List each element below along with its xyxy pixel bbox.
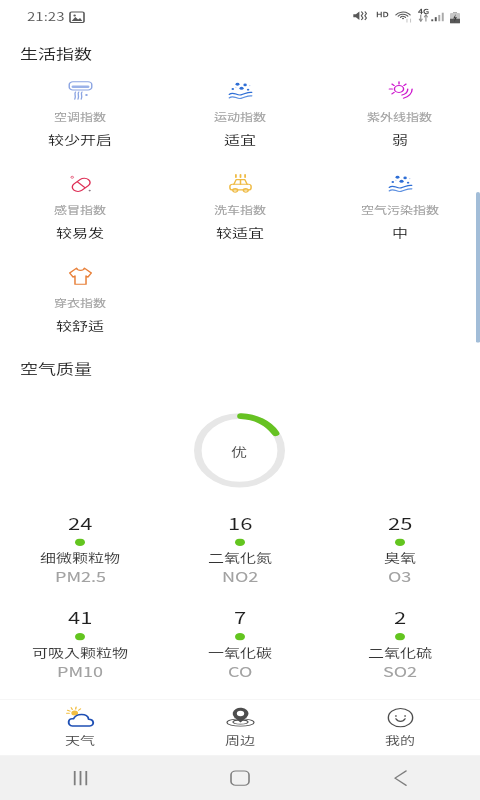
staticText: 弱: [392, 130, 409, 148]
staticText: NO2: [222, 566, 259, 586]
button[interactable]: 7: [160, 604, 320, 698]
staticText: 41: [68, 604, 93, 628]
staticText: SO2: [383, 661, 418, 680]
staticText: 运动指数: [214, 109, 267, 124]
staticText: 生活指数: [20, 43, 92, 62]
button[interactable]: 24: [0, 510, 160, 604]
staticText: 7: [234, 604, 247, 628]
staticText: 一氧化碳: [208, 643, 273, 661]
staticText: 可吸入颗粒物: [32, 643, 129, 661]
button[interactable]: 紫外线指数: [320, 78, 480, 171]
button[interactable]: 空调指数: [0, 78, 160, 171]
staticText: 较易发: [56, 223, 105, 241]
staticText: 25: [388, 510, 413, 534]
button[interactable]: 2: [320, 604, 480, 698]
button[interactable]: 25: [320, 510, 480, 604]
staticText: 适宜: [224, 130, 257, 148]
staticText: 天气: [65, 732, 96, 748]
staticText: 紫外线指数: [367, 109, 433, 124]
staticText: 21:23: [27, 8, 65, 25]
button[interactable]: 感冒指数: [0, 171, 160, 264]
staticText: O3: [388, 566, 412, 586]
staticText: 洗车指数: [214, 202, 267, 217]
staticText: 空调指数: [54, 109, 107, 124]
button[interactable]: 运动指数: [160, 78, 320, 171]
staticText: 较少开启: [48, 130, 113, 148]
staticText: 优: [231, 442, 248, 460]
staticText: 细微颗粒物: [40, 549, 121, 566]
staticText: 2: [394, 604, 407, 628]
staticText: 4G: [418, 6, 430, 16]
button[interactable]: Home: [160, 755, 320, 800]
staticText: 二氧化氮: [208, 549, 273, 566]
staticText: CO: [228, 661, 253, 680]
staticText: 中: [392, 223, 409, 241]
button[interactable]: 天气: [0, 700, 160, 755]
button[interactable]: 周边: [160, 700, 320, 755]
staticText: 空气污染指数: [361, 202, 440, 217]
button[interactable]: 16: [160, 510, 320, 604]
staticText: PM10: [57, 661, 103, 680]
staticText: 臭氧: [384, 549, 417, 566]
button[interactable]: 穿衣指数: [0, 264, 160, 357]
staticText: PM2.5: [55, 566, 106, 586]
staticText: 穿衣指数: [54, 295, 107, 310]
button[interactable]: 我的: [320, 700, 480, 755]
staticText: 16: [228, 510, 253, 534]
staticText: 较适宜: [216, 223, 265, 241]
button[interactable]: 空气污染指数: [320, 171, 480, 264]
staticText: 我的: [385, 732, 416, 748]
button[interactable]: Recents: [0, 755, 160, 800]
staticText: HD: [376, 10, 389, 20]
staticText: 感冒指数: [54, 202, 107, 217]
button[interactable]: 41: [0, 604, 160, 698]
staticText: 空气质量: [20, 358, 92, 378]
staticText: 较舒适: [56, 316, 105, 334]
staticText: 24: [68, 510, 93, 534]
button[interactable]: Back: [320, 755, 480, 800]
button[interactable]: 洗车指数: [160, 171, 320, 264]
staticText: 周边: [225, 732, 256, 748]
staticText: 二氧化硫: [368, 643, 433, 661]
